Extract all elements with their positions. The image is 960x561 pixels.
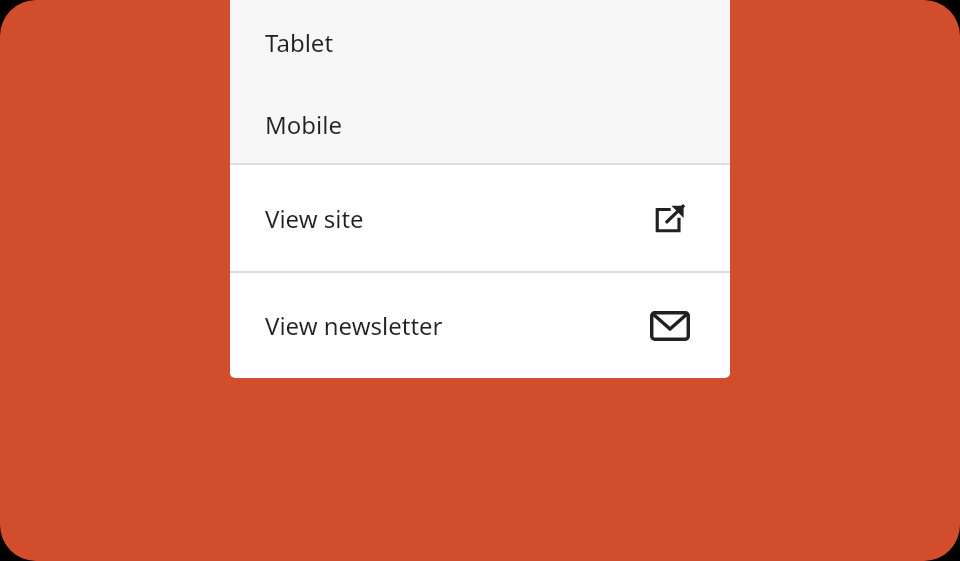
staticText: View site <box>265 202 364 235</box>
staticText: View newsletter <box>265 309 443 342</box>
other: View site in new window <box>655 203 685 233</box>
staticText: Tablet <box>265 26 334 59</box>
other: View newsletter email <box>650 311 690 341</box>
button[interactable]: View site <box>230 165 730 271</box>
staticText: Mobile <box>265 108 342 141</box>
button[interactable]: Mobile <box>230 85 730 163</box>
button[interactable]: Tablet <box>230 0 730 85</box>
button[interactable]: View newsletter <box>230 273 730 378</box>
